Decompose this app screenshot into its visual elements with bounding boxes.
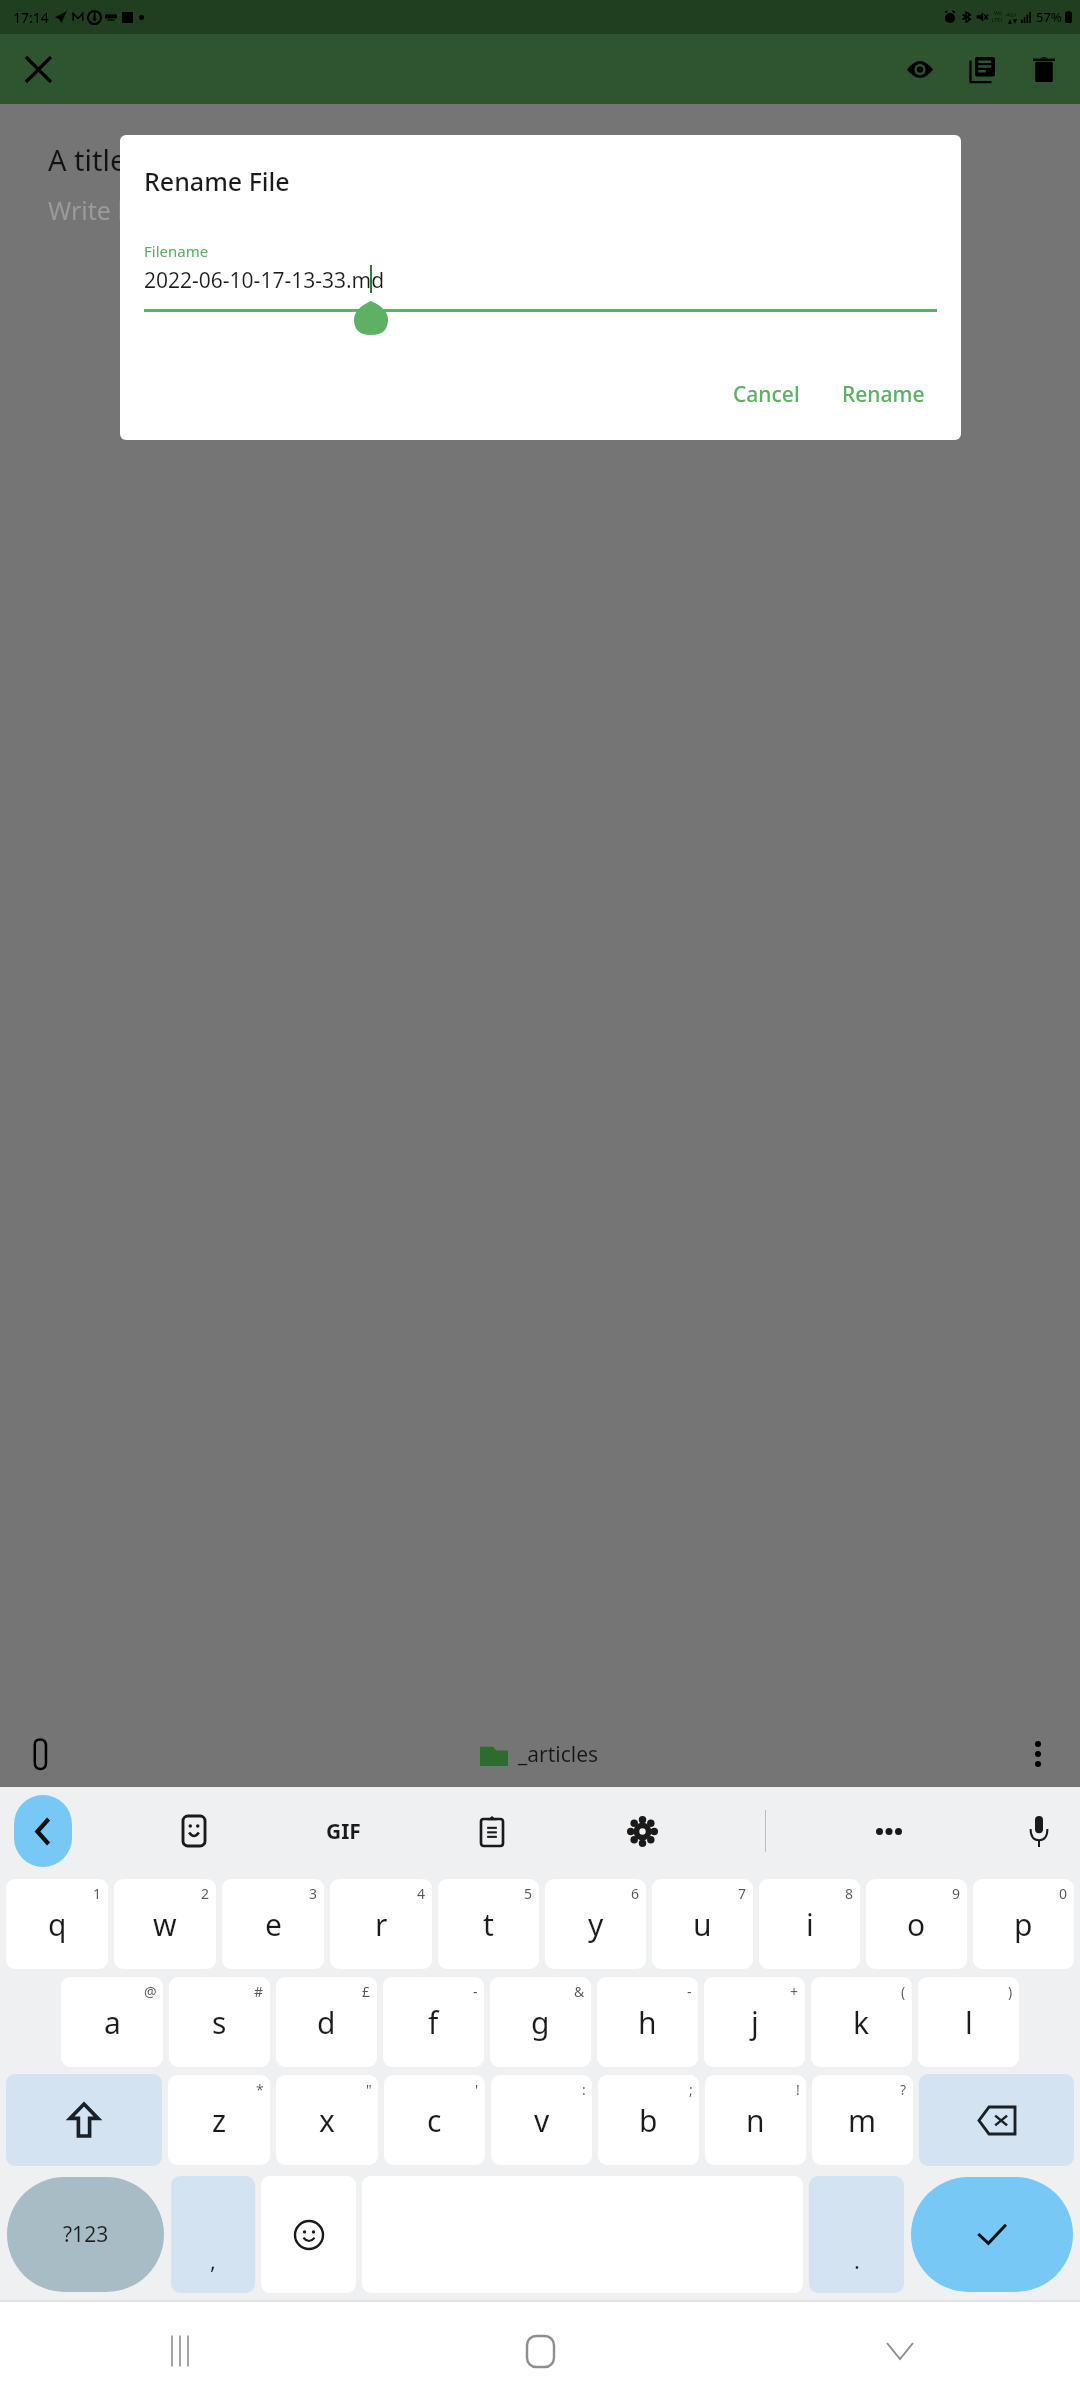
staticText: Vo): [994, 10, 1002, 17]
staticText: 3: [309, 1884, 318, 1903]
staticText: 8: [845, 1884, 854, 1903]
button[interactable]: Clipboard: [465, 1804, 519, 1858]
button[interactable]: d: [276, 1977, 377, 2067]
button[interactable]: g: [490, 1977, 591, 2067]
staticText: ,: [210, 2245, 216, 2275]
button[interactable]: q: [6, 1879, 108, 1969]
staticText: 4: [417, 1884, 426, 1903]
button[interactable]: ,: [171, 2176, 255, 2293]
staticText: 1: [93, 1884, 102, 1903]
button[interactable]: p: [973, 1879, 1074, 1969]
button[interactable]: n: [705, 2075, 806, 2165]
button[interactable]: ?123: [7, 2177, 164, 2292]
staticText: *: [256, 2080, 264, 2099]
staticText: Rename: [842, 380, 925, 409]
staticText: Rename File: [144, 164, 290, 198]
staticText: A title yes: [48, 140, 179, 179]
staticText: 2: [201, 1884, 210, 1903]
button[interactable]: r: [330, 1879, 432, 1969]
button[interactable]: Home: [360, 2302, 720, 2400]
button[interactable]: a: [61, 1977, 163, 2067]
button[interactable]: Rename: [830, 371, 937, 418]
button[interactable]: More options: [1014, 1730, 1062, 1778]
button[interactable]: m: [812, 2075, 913, 2165]
button[interactable]: z: [168, 2075, 270, 2165]
button[interactable]: .: [809, 2176, 904, 2293]
staticText: .: [854, 2245, 860, 2275]
staticText: ': [475, 2080, 479, 2099]
staticText: i: [806, 1904, 814, 1945]
button[interactable]: Close: [14, 45, 62, 93]
staticText: ": [366, 2080, 372, 2099]
button[interactable]: GIF: [316, 1804, 370, 1858]
button[interactable]: Emoji: [261, 2176, 356, 2293]
button[interactable]: c: [384, 2075, 485, 2165]
staticText: £: [362, 1982, 371, 2001]
button[interactable]: Enter: [911, 2177, 1073, 2292]
button[interactable]: s: [169, 1977, 270, 2067]
staticText: ?: [900, 2080, 907, 2099]
staticText: r: [375, 1904, 388, 1945]
staticText: v: [534, 2100, 550, 2141]
staticText: !: [796, 2080, 800, 2099]
staticText: 4G+: [1006, 11, 1018, 19]
staticText: b: [639, 2100, 658, 2141]
button[interactable]: Settings: [615, 1804, 669, 1858]
button[interactable]: Preview: [896, 45, 944, 93]
staticText: p: [1014, 1904, 1033, 1945]
button[interactable]: Voice input: [1012, 1804, 1066, 1858]
button[interactable]: Backspace: [919, 2074, 1074, 2166]
button[interactable]: Library: [958, 45, 1006, 93]
staticText: -: [473, 1982, 478, 2001]
staticText: Cancel: [733, 380, 800, 409]
button[interactable]: h: [597, 1977, 698, 2067]
staticText: c: [427, 2100, 442, 2141]
staticText: (: [901, 1982, 906, 2001]
staticText: ): [1008, 1982, 1013, 2001]
staticText: :: [582, 2080, 586, 2099]
staticText: @: [144, 1982, 157, 2001]
staticText: 2022-06-10-17-13-33.md: [144, 266, 385, 295]
button[interactable]: Hide keyboard: [720, 2302, 1080, 2400]
button[interactable]: x: [276, 2075, 378, 2165]
button[interactable]: Back: [14, 1795, 72, 1867]
button[interactable]: _articles: [480, 1740, 599, 1769]
button[interactable]: j: [704, 1977, 805, 2067]
staticText: 0: [1059, 1884, 1068, 1903]
staticText: n: [746, 2100, 765, 2141]
button[interactable]: f: [383, 1977, 484, 2067]
staticText: k: [853, 2002, 870, 2043]
button[interactable]: Cancel: [721, 371, 812, 418]
staticText: 17:14: [13, 8, 49, 27]
button[interactable]: l: [918, 1977, 1019, 2067]
button[interactable]: y: [545, 1879, 646, 1969]
button[interactable]: Shift: [6, 2074, 162, 2166]
staticText: 6: [631, 1884, 640, 1903]
staticText: 57%: [1036, 8, 1062, 26]
button[interactable]: e: [222, 1879, 324, 1969]
staticText: Write here: [48, 193, 171, 227]
staticText: e: [265, 1904, 282, 1945]
button[interactable]: Delete: [1020, 45, 1068, 93]
button[interactable]: More: [862, 1804, 916, 1858]
staticText: o: [907, 1904, 926, 1945]
staticText: #: [254, 1982, 264, 2001]
button[interactable]: k: [811, 1977, 912, 2067]
staticText: j: [751, 2002, 759, 2043]
staticText: +: [790, 1982, 799, 2001]
button[interactable]: v: [491, 2075, 592, 2165]
button[interactable]: Stickers: [167, 1804, 221, 1858]
staticText: f: [428, 2002, 439, 2043]
staticText: w: [153, 1904, 177, 1945]
button[interactable]: u: [652, 1879, 753, 1969]
button[interactable]: o: [866, 1879, 967, 1969]
staticText: l: [965, 2002, 973, 2043]
button[interactable]: w: [114, 1879, 216, 1969]
staticText: s: [212, 2002, 227, 2043]
button[interactable]: Recents: [0, 2302, 360, 2400]
button[interactable]: t: [438, 1879, 539, 1969]
button[interactable]: Attach: [18, 1730, 66, 1778]
button[interactable]: b: [598, 2075, 699, 2165]
button[interactable]: i: [759, 1879, 860, 1969]
